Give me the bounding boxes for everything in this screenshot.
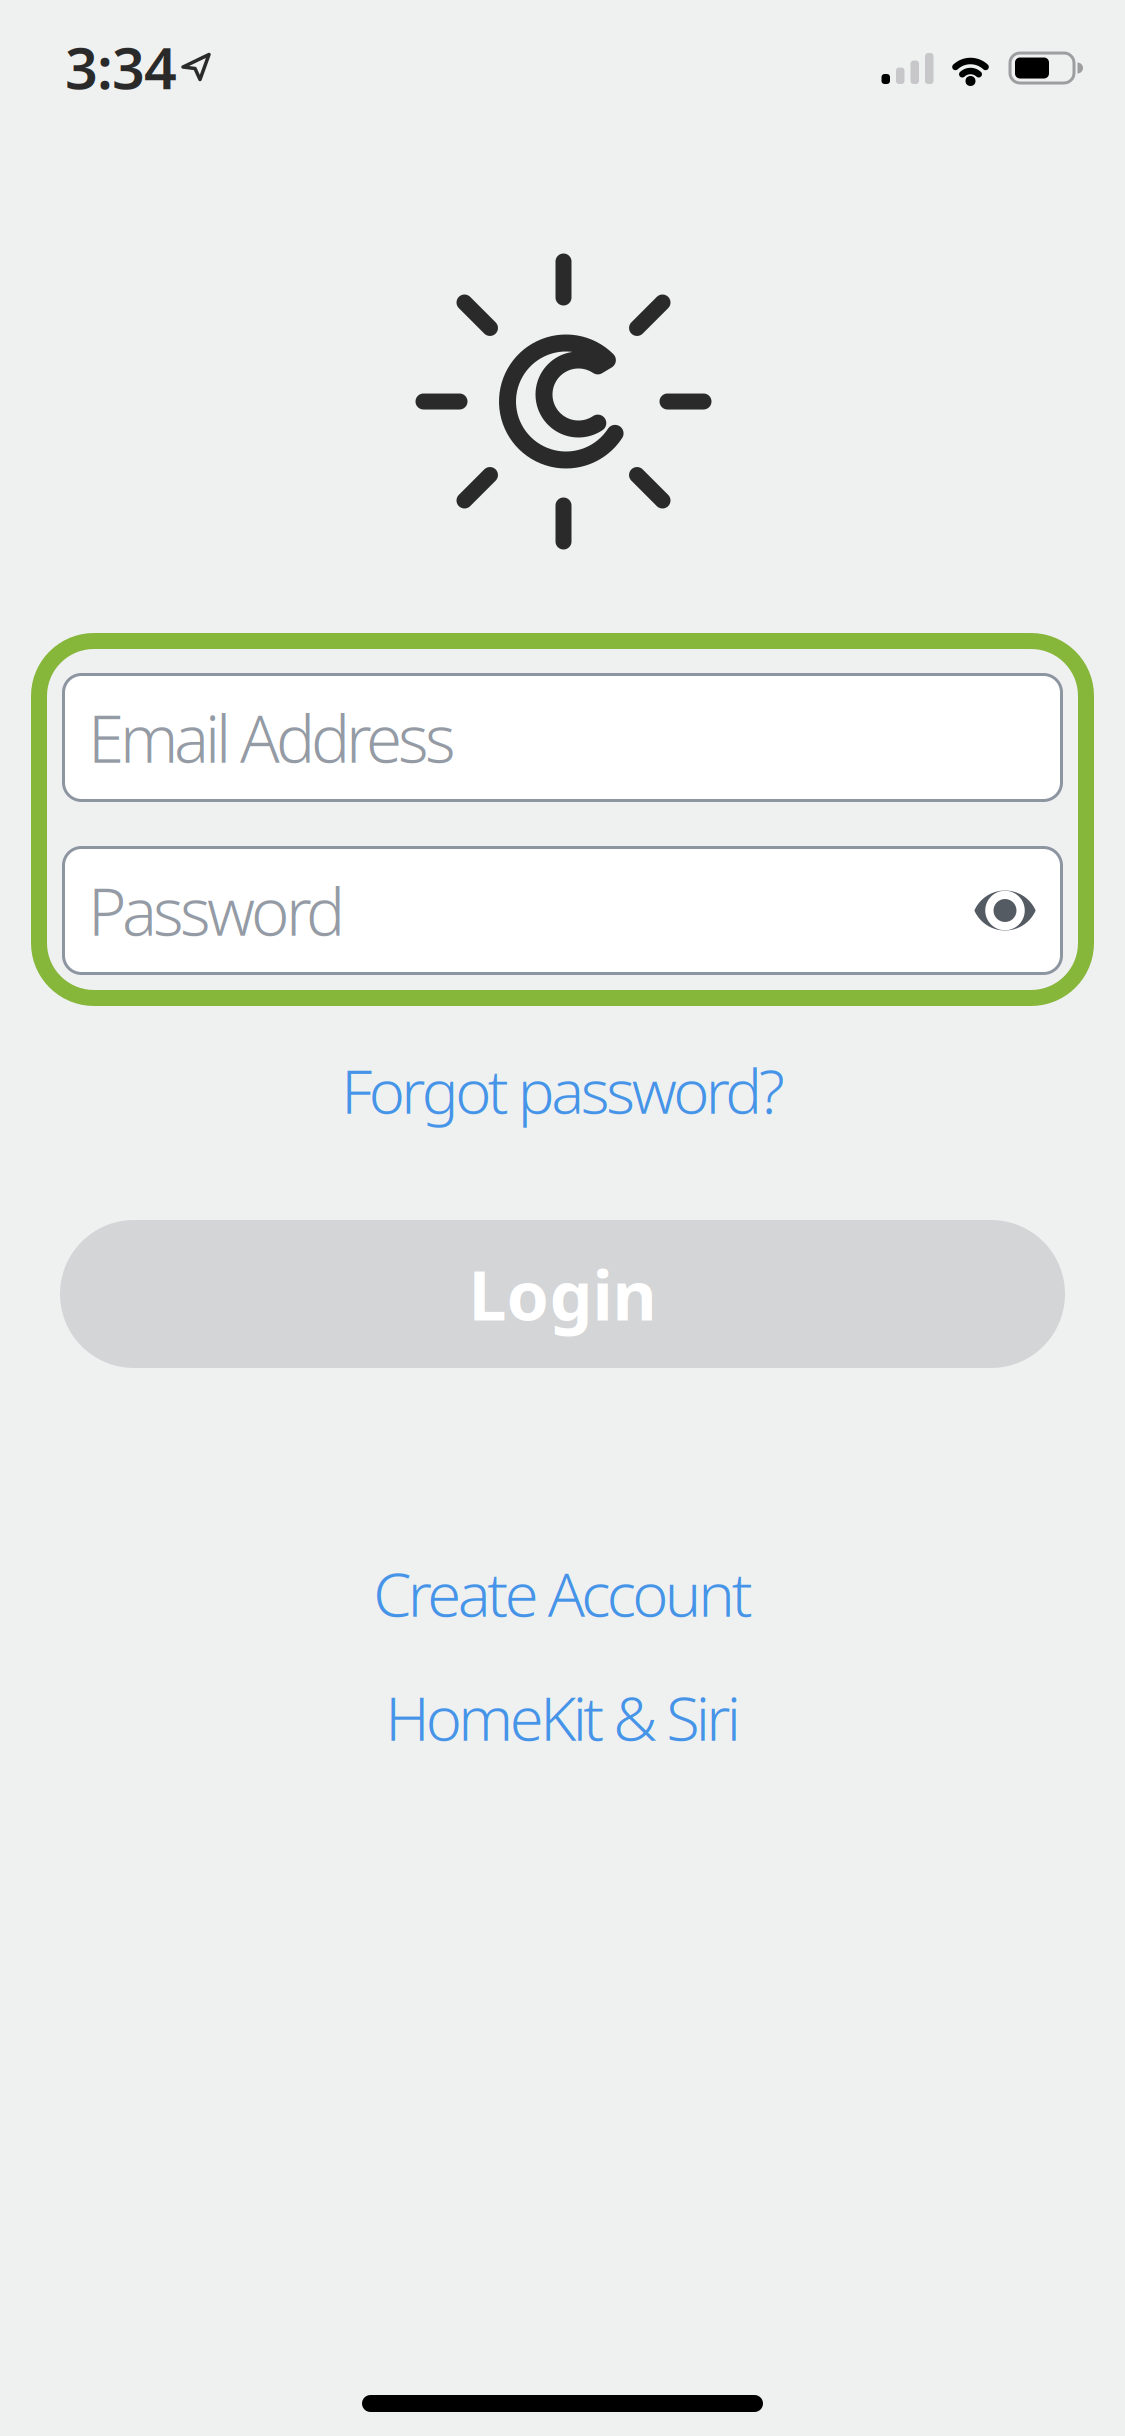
- button[interactable]: Password: [62, 846, 1063, 975]
- staticText: Password: [88, 867, 345, 954]
- staticText: 3:34: [65, 29, 177, 105]
- staticText: Create Account: [373, 1552, 753, 1634]
- staticText: HomeKit & Siri: [385, 1676, 741, 1758]
- button[interactable]: Login: [60, 1220, 1065, 1368]
- staticText: Forgot password?: [341, 1049, 785, 1131]
- staticText: Email Address: [88, 694, 456, 781]
- staticText: Login: [468, 1249, 656, 1339]
- button[interactable]: Show password: [974, 890, 1036, 930]
- button[interactable]: Email Address: [62, 673, 1063, 802]
- button[interactable]: HomeKit & Siri: [385, 1676, 741, 1758]
- button[interactable]: Create Account: [373, 1552, 753, 1634]
- button[interactable]: Forgot password?: [341, 1049, 785, 1131]
